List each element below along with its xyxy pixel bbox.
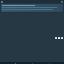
button[interactable]: Library [30, 62, 34, 64]
button[interactable]: Profile [47, 62, 51, 64]
button[interactable]: Option one [55, 37, 57, 39]
button[interactable]: Option three [61, 37, 63, 39]
button[interactable]: Option two [58, 37, 60, 39]
button[interactable]: Search [61, 1, 63, 3]
button[interactable]: Home [13, 62, 17, 64]
button[interactable] [1, 4, 63, 12]
